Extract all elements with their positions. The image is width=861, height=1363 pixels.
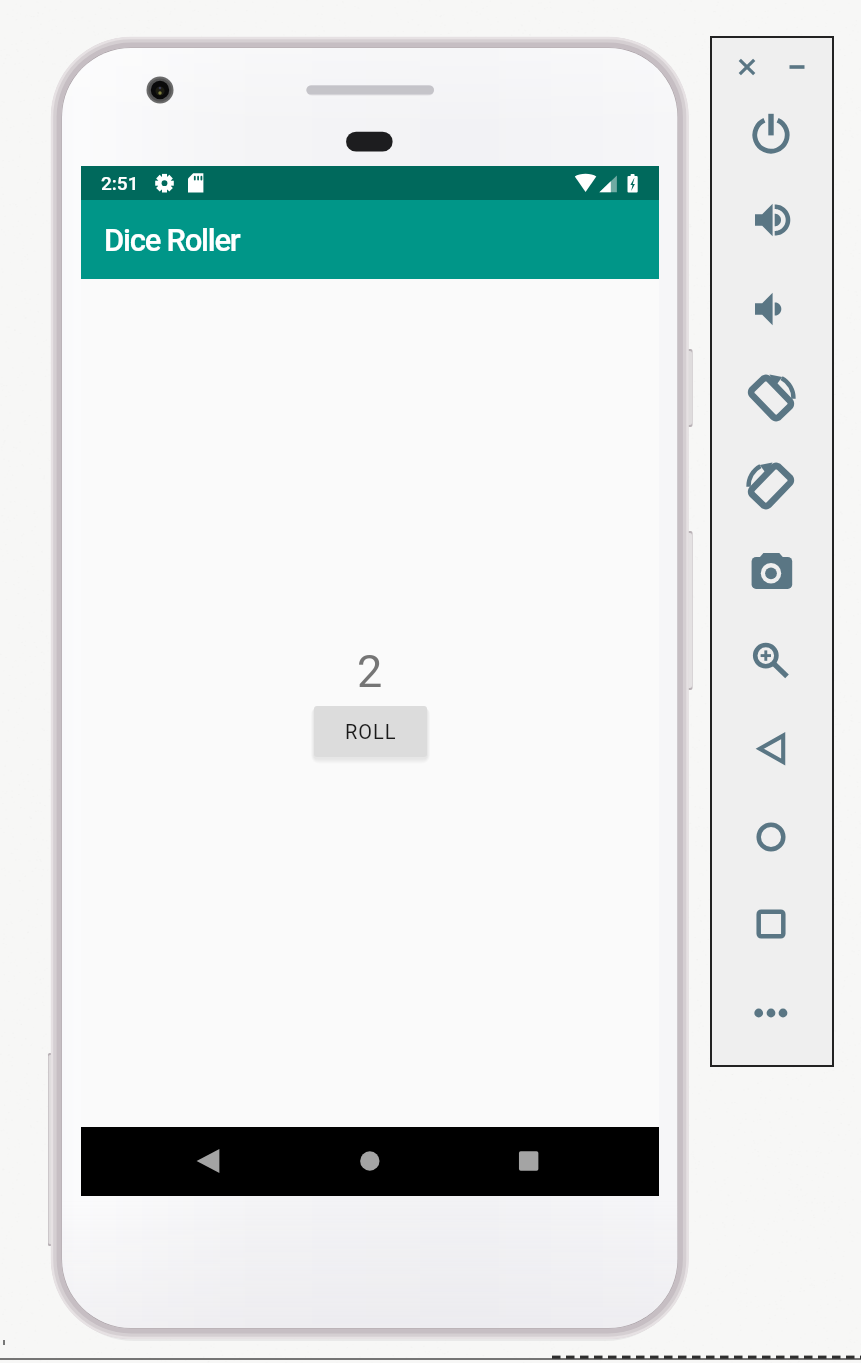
button[interactable]: Volume down	[737, 277, 801, 341]
button[interactable]: Overview	[739, 892, 803, 956]
button[interactable]: More options	[739, 981, 803, 1045]
button[interactable]: Home	[739, 805, 803, 869]
button[interactable]: Back	[739, 717, 803, 781]
button[interactable]: Volume up	[737, 188, 801, 252]
button[interactable]: Minimize	[765, 35, 829, 99]
button[interactable]: Power	[739, 103, 803, 167]
button[interactable]: Zoom	[738, 626, 802, 690]
staticText: Dice Roller	[104, 222, 240, 258]
button[interactable]: Screenshot	[739, 541, 803, 605]
staticText: ROLL	[345, 720, 397, 743]
button[interactable]: ROLL	[314, 706, 427, 757]
button[interactable]: Close	[715, 35, 779, 99]
staticText: 2	[357, 645, 383, 698]
button[interactable]: Rotate right	[739, 454, 803, 518]
staticText: 2:51	[101, 172, 139, 194]
button[interactable]: Rotate left	[739, 366, 803, 430]
